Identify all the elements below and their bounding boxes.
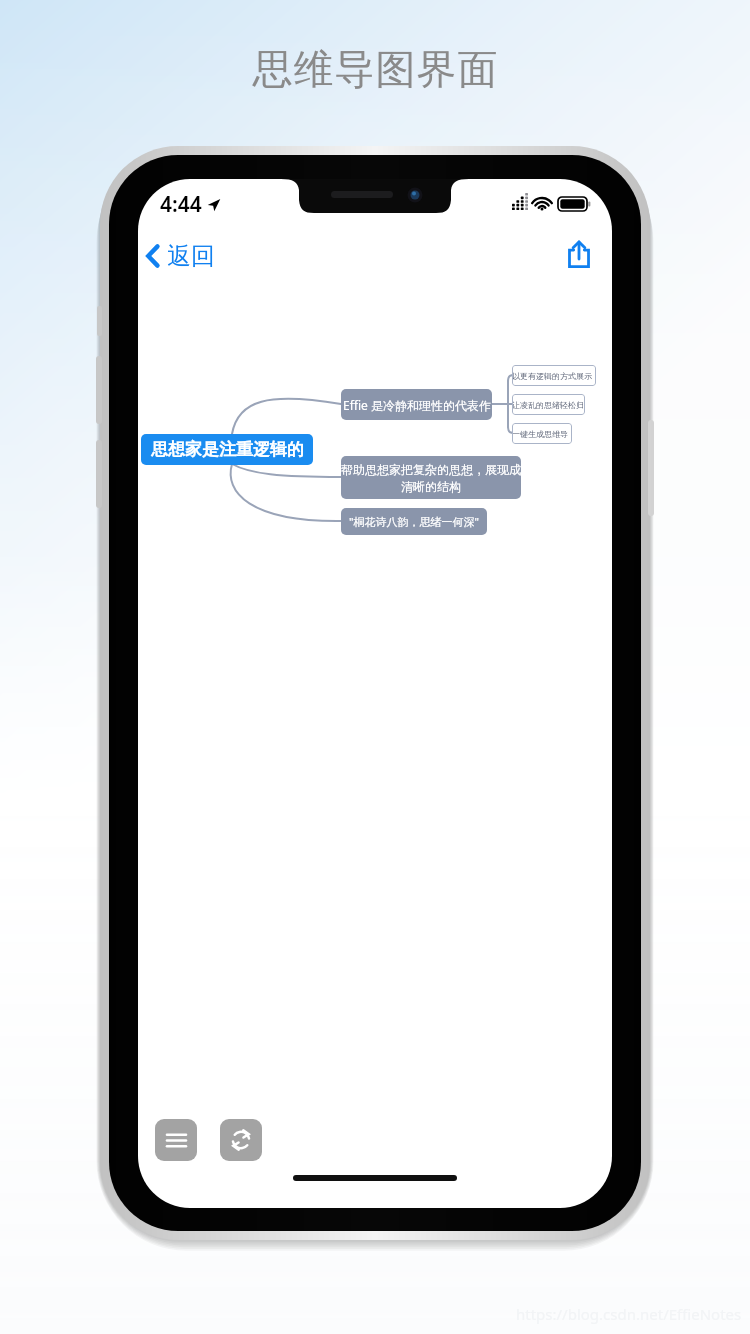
button[interactable]: 以更有逻辑的方式展示列表 xyxy=(512,365,596,386)
staticText: 4:44 xyxy=(160,190,202,219)
button[interactable]: Refresh xyxy=(220,1119,262,1161)
button[interactable]: Share xyxy=(558,233,600,275)
staticText: 以更有逻辑的方式展示列表 xyxy=(512,371,596,381)
staticText: https://blog.csdn.net/EffieNotes xyxy=(516,1304,742,1324)
button[interactable]: 帮助思想家把复杂的思想，展现成 清晰的结构 xyxy=(341,456,521,499)
staticText: 思维导图界面 xyxy=(252,44,498,94)
staticText: 让凌乱的思绪轻松归位 xyxy=(512,400,585,410)
button[interactable]: 让凌乱的思绪轻松归位 xyxy=(512,394,585,415)
staticText: 思想家是注重逻辑的 xyxy=(151,439,304,460)
staticText: "桐花诗八韵，思绪一何深" xyxy=(349,514,479,529)
button[interactable]: 思想家是注重逻辑的 xyxy=(141,434,313,465)
button[interactable]: Effie 是冷静和理性的代表作 xyxy=(341,389,492,420)
button[interactable]: Menu xyxy=(155,1119,197,1161)
button[interactable]: 返回 xyxy=(142,238,219,274)
staticText: Effie 是冷静和理性的代表作 xyxy=(343,397,491,413)
staticText: 帮助思想家把复杂的思想，展现成 清晰的结构 xyxy=(341,462,521,494)
button[interactable]: 一键生成思维导图 xyxy=(512,423,572,444)
button[interactable]: "桐花诗八韵，思绪一何深" xyxy=(341,508,487,535)
staticText: 一键生成思维导图 xyxy=(512,429,572,439)
staticText: 返回 xyxy=(167,241,215,271)
